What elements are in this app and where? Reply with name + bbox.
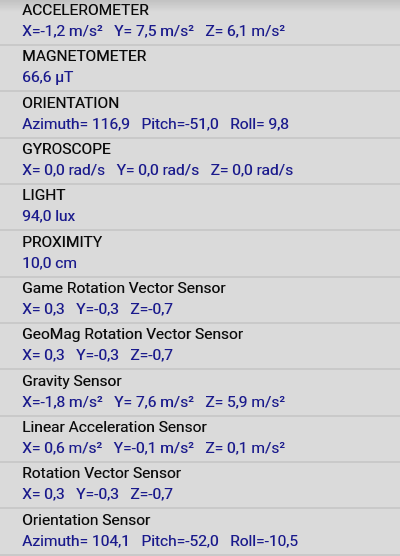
staticText: X= 0,6 m/s² Y=-0,1 m/s² Z= 0,1 m/s² bbox=[22, 439, 285, 457]
staticText: Gravity Sensor bbox=[22, 372, 122, 390]
staticText: Linear Acceleration Sensor bbox=[22, 418, 207, 436]
staticText: Azimuth= 116,9 Pitch=-51,0 Roll= 9,8 bbox=[22, 115, 289, 133]
staticText: Game Rotation Vector Sensor bbox=[22, 279, 226, 297]
staticText: GeoMag Rotation Vector Sensor bbox=[22, 325, 243, 343]
button[interactable]: Rotation Vector Sensor bbox=[0, 463, 400, 509]
staticText: X= 0,3 Y=-0,3 Z=-0,7 bbox=[22, 485, 173, 503]
staticText: 66,6 µT bbox=[22, 68, 74, 86]
staticText: X=-1,2 m/s² Y= 7,5 m/s² Z= 6,1 m/s² bbox=[22, 22, 285, 40]
staticText: 94,0 lux bbox=[22, 207, 76, 225]
staticText: 94,0 lux bbox=[22, 207, 76, 225]
staticText: 66,6 µT bbox=[22, 68, 74, 86]
staticText: Azimuth= 104,1 Pitch=-52,0 Roll=-10,5 bbox=[22, 532, 298, 550]
button[interactable]: Game Rotation Vector Sensor bbox=[0, 278, 400, 324]
staticText: LIGHT bbox=[22, 186, 66, 204]
staticText: Azimuth= 116,9 Pitch=-51,0 Roll= 9,8 bbox=[22, 115, 289, 133]
button[interactable]: Orientation Sensor bbox=[0, 510, 400, 556]
staticText: Orientation Sensor bbox=[22, 511, 151, 529]
staticText: X= 0,0 rad/s Y= 0,0 rad/s Z= 0,0 rad/s bbox=[22, 161, 293, 179]
staticText: X= 0,3 Y=-0,3 Z=-0,7 bbox=[22, 346, 173, 364]
staticText: GeoMag Rotation Vector Sensor bbox=[22, 325, 243, 343]
staticText: Gravity Sensor bbox=[22, 372, 122, 390]
staticText: X= 0,3 Y=-0,3 Z=-0,7 bbox=[22, 485, 173, 503]
staticText: Linear Acceleration Sensor bbox=[22, 418, 207, 436]
staticText: X= 0,3 Y=-0,3 Z=-0,7 bbox=[22, 346, 173, 364]
staticText: GYROSCOPE bbox=[22, 140, 111, 158]
staticText: X= 0,3 Y=-0,3 Z=-0,7 bbox=[22, 300, 173, 318]
staticText: Rotation Vector Sensor bbox=[22, 464, 181, 482]
button[interactable]: GeoMag Rotation Vector Sensor bbox=[0, 324, 400, 370]
button[interactable]: Gravity Sensor bbox=[0, 371, 400, 417]
staticText: ORIENTATION bbox=[22, 94, 120, 112]
staticText: ACCELEROMETER bbox=[22, 1, 149, 19]
staticText: LIGHT bbox=[22, 186, 66, 204]
staticText: Orientation Sensor bbox=[22, 511, 151, 529]
staticText: X= 0,0 rad/s Y= 0,0 rad/s Z= 0,0 rad/s bbox=[22, 161, 293, 179]
staticText: Rotation Vector Sensor bbox=[22, 464, 181, 482]
staticText: X=-1,8 m/s² Y= 7,6 m/s² Z= 5,9 m/s² bbox=[22, 393, 285, 411]
staticText: X=-1,8 m/s² Y= 7,6 m/s² Z= 5,9 m/s² bbox=[22, 393, 285, 411]
button[interactable]: LIGHT bbox=[0, 185, 400, 231]
staticText: X=-1,2 m/s² Y= 7,5 m/s² Z= 6,1 m/s² bbox=[22, 22, 285, 40]
staticText: PROXIMITY bbox=[22, 233, 102, 251]
button[interactable]: GYROSCOPE bbox=[0, 139, 400, 185]
staticText: 10,0 cm bbox=[22, 254, 77, 272]
button[interactable]: MAGNETOMETER bbox=[0, 46, 400, 92]
staticText: MAGNETOMETER bbox=[22, 47, 147, 65]
button[interactable]: Linear Acceleration Sensor bbox=[0, 417, 400, 463]
staticText: Game Rotation Vector Sensor bbox=[22, 279, 226, 297]
staticText: 10,0 cm bbox=[22, 254, 77, 272]
button[interactable]: PROXIMITY bbox=[0, 232, 400, 278]
staticText: MAGNETOMETER bbox=[22, 47, 147, 65]
button[interactable]: ORIENTATION bbox=[0, 93, 400, 139]
staticText: X= 0,3 Y=-0,3 Z=-0,7 bbox=[22, 300, 173, 318]
staticText: GYROSCOPE bbox=[22, 140, 111, 158]
staticText: Azimuth= 104,1 Pitch=-52,0 Roll=-10,5 bbox=[22, 532, 298, 550]
staticText: ORIENTATION bbox=[22, 94, 120, 112]
staticText: PROXIMITY bbox=[22, 233, 102, 251]
staticText: X= 0,6 m/s² Y=-0,1 m/s² Z= 0,1 m/s² bbox=[22, 439, 285, 457]
button[interactable]: ACCELEROMETER bbox=[0, 0, 400, 46]
staticText: ACCELEROMETER bbox=[22, 1, 149, 19]
